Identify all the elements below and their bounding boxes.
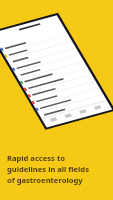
staticText: Rapid access to guidelines in all fields…	[7, 153, 89, 185]
